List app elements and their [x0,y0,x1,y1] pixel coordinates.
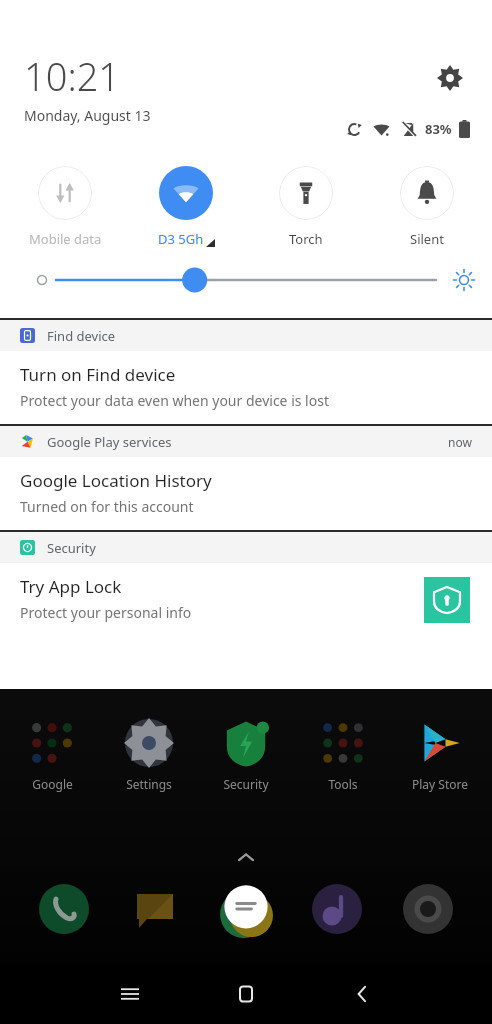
button[interactable]: Settings [104,718,194,792]
staticText: Turned on for this account [20,497,194,516]
button[interactable]: Notes [219,882,273,936]
button[interactable]: Tools [298,718,388,792]
button[interactable]: Open app drawer [233,845,259,871]
staticText: Protect your personal info [20,603,192,622]
staticText: D3 5Gh [158,230,204,248]
staticText: Torch [289,230,323,248]
staticText: now [448,434,472,450]
button[interactable]: Back [334,966,390,1022]
staticText: Google Location History [20,469,212,492]
staticText: Silent [410,230,444,248]
staticText: Google Play services [47,433,172,451]
button[interactable]: Mobile data [10,164,120,250]
staticText: 83% [425,120,452,138]
staticText: Tools [328,776,358,792]
staticText: Mobile data [29,230,102,248]
button[interactable]: Google [7,718,97,792]
button[interactable]: App Lock [424,577,470,623]
button[interactable]: Play Store [395,718,485,792]
button[interactable]: D3 5Gh [131,164,241,250]
button[interactable]: Camera [401,882,455,936]
button[interactable]: Torch [251,164,361,250]
staticText: Turn on Find device [20,363,176,386]
staticText: Security [223,776,269,792]
staticText: 10:21 [24,50,121,102]
button[interactable]: Music [310,882,364,936]
button[interactable]: Phone [37,882,91,936]
staticText: Monday, August 13 [24,106,151,125]
staticText: Google [32,776,73,792]
button[interactable]: Security [201,718,291,792]
staticText: Security [47,539,96,557]
staticText: Protect your data even when your device … [20,391,329,410]
button[interactable] [0,264,492,296]
button[interactable]: Settings [434,62,466,94]
button[interactable]: Silent [372,164,482,250]
button[interactable]: Google Play services [0,424,492,530]
staticText: Settings [126,776,172,792]
button[interactable]: Home [218,966,274,1022]
button[interactable]: Security [0,530,492,636]
button[interactable]: Recent apps [102,966,158,1022]
button[interactable]: Find device [0,318,492,424]
staticText: Play Store [412,776,468,792]
staticText: Try App Lock [20,575,122,598]
button[interactable]: Messages [128,882,182,936]
staticText: Find device [47,327,116,345]
